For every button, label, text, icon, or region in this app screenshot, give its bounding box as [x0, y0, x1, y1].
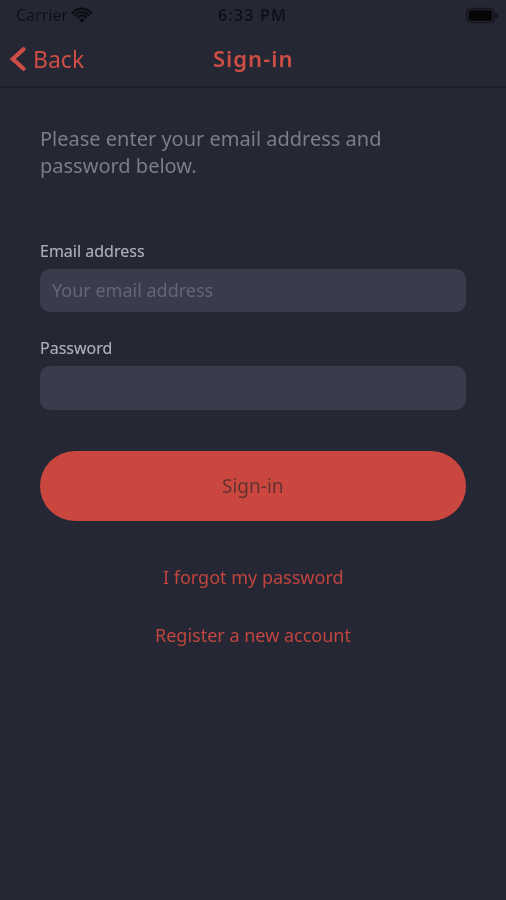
staticText: Your email address [52, 278, 214, 303]
staticText: 6:33 PM [218, 4, 288, 26]
staticText: Sign-in [222, 473, 284, 499]
staticText: Password [40, 337, 113, 359]
staticText: I forgot my password [163, 565, 344, 590]
staticText: Back [33, 43, 85, 74]
button[interactable]: I forgot my password [40, 565, 466, 590]
staticText: Carrier [16, 4, 69, 26]
staticText: Sign-in [213, 43, 294, 73]
button[interactable]: Sign-in [40, 451, 466, 521]
button[interactable]: Register a new account [40, 623, 466, 648]
button[interactable]: Your email address [40, 269, 466, 312]
staticText: Register a new account [155, 623, 351, 648]
staticText: Please enter your email address and pass… [40, 125, 382, 179]
staticText: Email address [40, 240, 145, 262]
button[interactable]: Back [10, 43, 85, 74]
